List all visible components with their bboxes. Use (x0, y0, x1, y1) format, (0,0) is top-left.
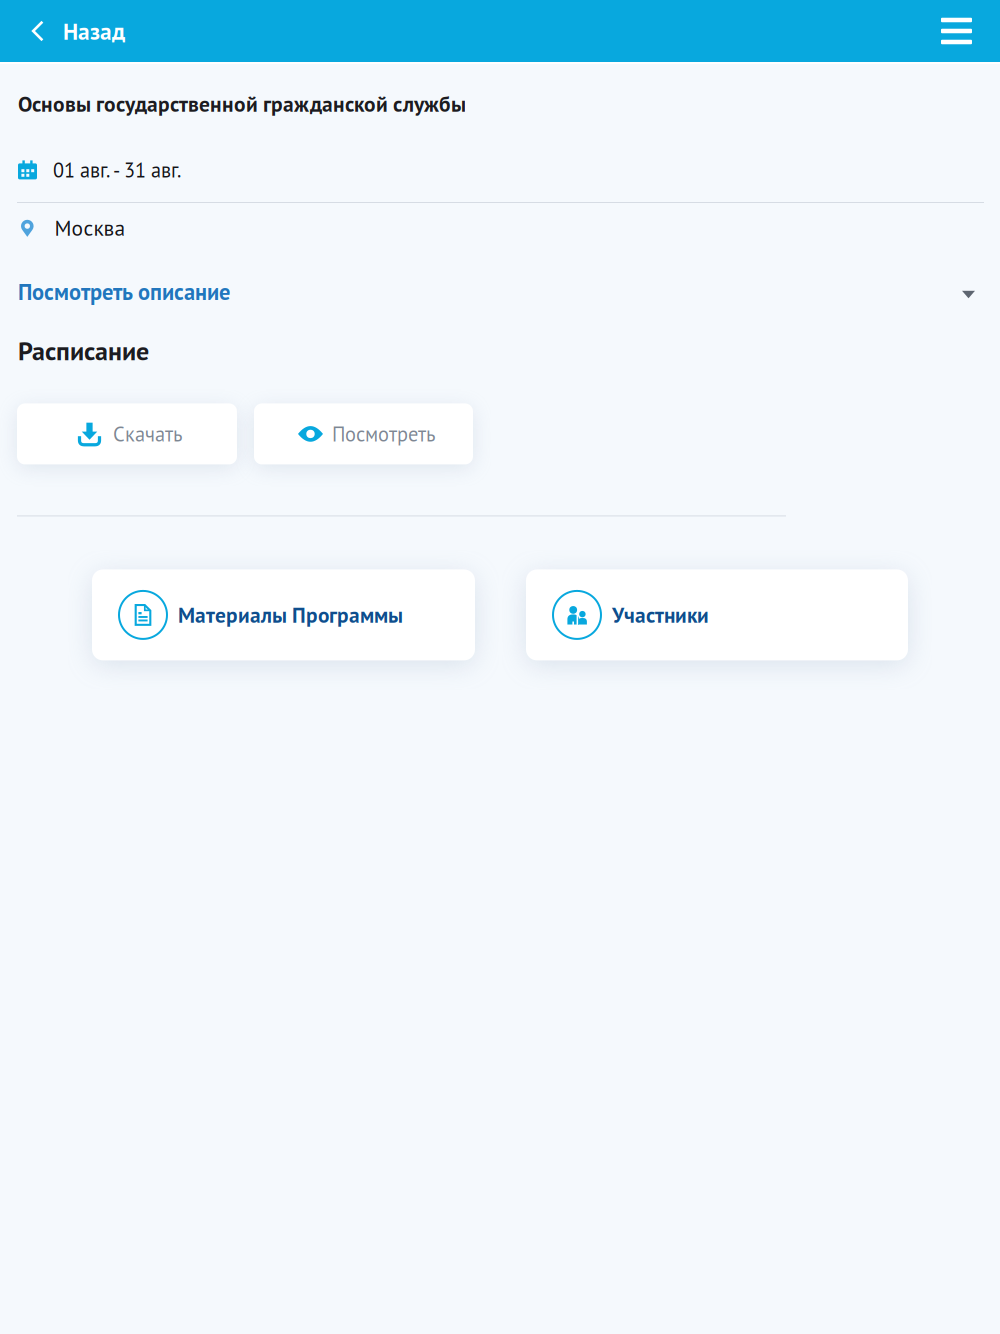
staticText: Материалы Программы (178, 601, 403, 629)
staticText: Назад (63, 16, 125, 46)
staticText: Посмотреть (332, 421, 435, 447)
button[interactable]: Материалы Программы (92, 569, 475, 660)
staticText: Основы государственной гражданской служб… (18, 90, 466, 118)
staticText: Расписание (18, 334, 149, 367)
staticText: Участники (612, 601, 709, 629)
button[interactable]: Участники (526, 569, 908, 660)
button[interactable]: Посмотреть описание (0, 269, 1000, 315)
staticText: Посмотреть описание (18, 277, 230, 306)
button[interactable]: Назад (0, 0, 141, 62)
staticText: Москва (55, 214, 126, 242)
button[interactable]: Скачать (17, 403, 237, 464)
staticText: Скачать (113, 421, 182, 447)
staticText: 01 авг. - 31 авг. (53, 157, 181, 183)
button[interactable]: Посмотреть (254, 403, 473, 464)
button[interactable]: Меню (921, 0, 1000, 62)
